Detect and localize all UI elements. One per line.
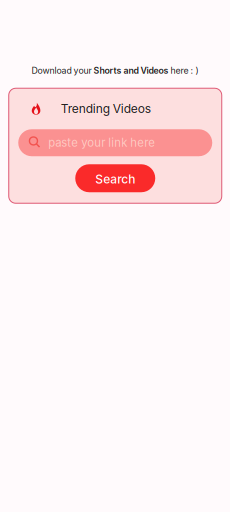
staticText: Trending Videos bbox=[61, 101, 151, 116]
staticText: paste your link here bbox=[48, 136, 155, 150]
staticText: Search bbox=[95, 172, 135, 186]
button[interactable]: Search bbox=[75, 164, 155, 192]
staticText: Download your Shorts and Videos here : ) bbox=[31, 65, 198, 76]
